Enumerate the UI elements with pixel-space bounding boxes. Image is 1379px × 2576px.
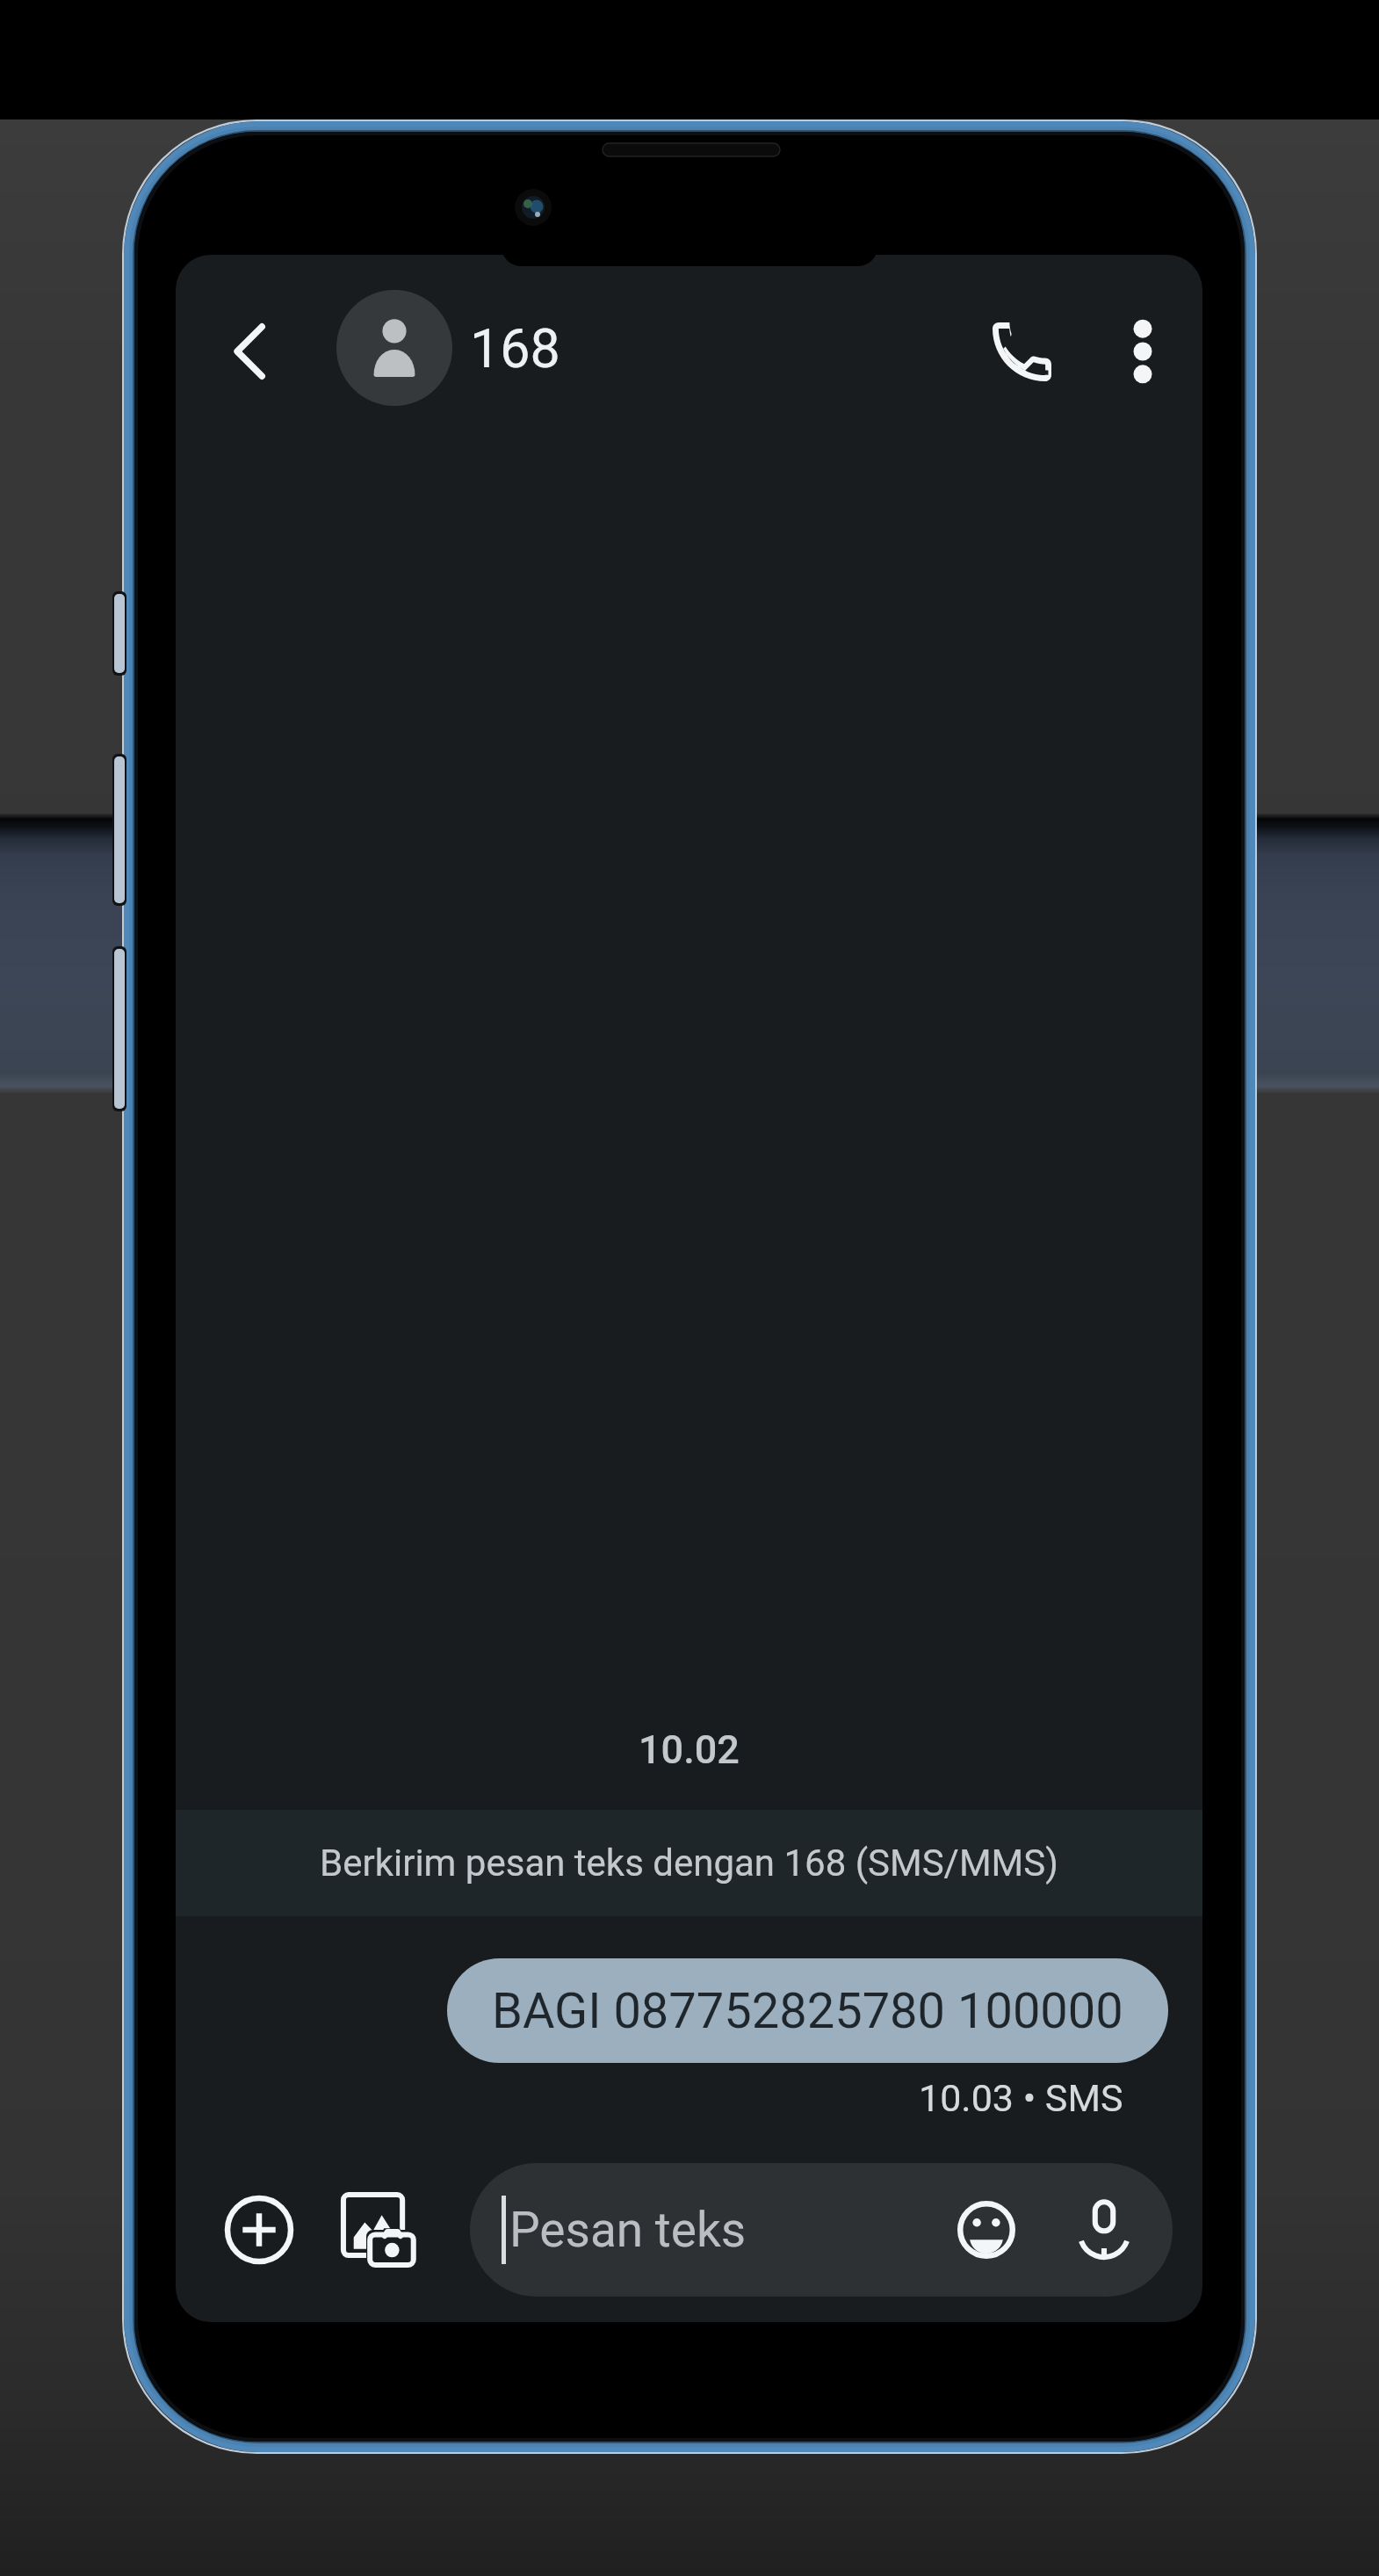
button[interactable]: More options: [1090, 299, 1195, 404]
button[interactable]: 168: [336, 288, 736, 408]
button[interactable]: Add attachment: [206, 2177, 312, 2283]
button[interactable]: Pesan teks: [470, 2163, 1173, 2297]
button[interactable]: BAGI 087752825780 100000: [447, 1958, 1168, 2063]
button[interactable]: Call: [969, 299, 1074, 404]
staticText: Berkirim pesan teks dengan 168 (SMS/MMS): [320, 1842, 1058, 1885]
button[interactable]: Back: [200, 299, 306, 404]
button[interactable]: Gallery and camera: [325, 2177, 430, 2283]
button[interactable]: Emoji: [937, 2181, 1036, 2279]
staticText: 168: [470, 317, 560, 380]
staticText: BAGI 087752825780 100000: [492, 1982, 1123, 2040]
staticText: 10.03 • SMS: [919, 2076, 1123, 2120]
button[interactable]: Voice input: [1055, 2181, 1153, 2279]
staticText: 10.02: [639, 1726, 740, 1773]
staticText: Pesan teks: [509, 2202, 747, 2258]
